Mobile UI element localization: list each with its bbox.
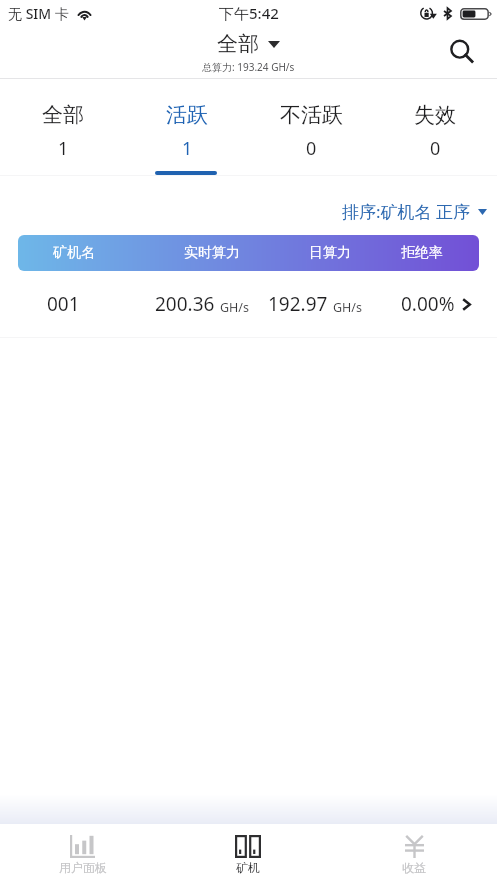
button[interactable]: 不活跃 (249, 79, 373, 175)
button[interactable]: 排序:矿机名 正序 (338, 185, 491, 226)
staticText: 0 (306, 136, 317, 161)
staticText: 活跃 (166, 102, 208, 128)
staticText: 001 (47, 291, 80, 317)
button[interactable]: 001 (0, 271, 497, 337)
button[interactable]: Search (440, 30, 484, 74)
button[interactable]: 用户面板 (0, 824, 165, 883)
staticText: GH/s (333, 299, 363, 316)
staticText: 矿机名 (53, 244, 95, 262)
staticText: 收益 (402, 860, 426, 875)
staticText: 拒绝率 (401, 244, 443, 262)
button[interactable]: 收益 (331, 824, 497, 883)
staticText: 0 (430, 136, 441, 161)
staticText: 失效 (414, 102, 456, 128)
staticText: 200.36 (155, 291, 215, 317)
button[interactable]: 活跃 (125, 79, 249, 175)
staticText: 实时算力 (184, 244, 240, 262)
staticText: 不活跃 (280, 102, 343, 128)
staticText: 192.97 (268, 291, 328, 317)
staticText: 无 SIM 卡 (8, 4, 69, 23)
staticText: 用户面板 (59, 860, 107, 875)
staticText: 全部 (217, 31, 259, 57)
staticText: 总算力: 193.24 GH/s (202, 60, 295, 74)
button[interactable]: 矿机 (165, 824, 331, 883)
staticText: 下午5:42 (219, 3, 279, 23)
staticText: 1 (182, 136, 193, 161)
staticText: 日算力 (309, 244, 351, 262)
staticText: 矿机 (236, 860, 260, 875)
button[interactable]: 全部 (0, 79, 125, 175)
button[interactable]: 失效 (373, 79, 497, 175)
staticText: 0.00% (401, 291, 455, 317)
button[interactable]: 全部 (190, 26, 307, 74)
staticText: 排序:矿机名 正序 (342, 200, 470, 223)
staticText: GH/s (220, 299, 250, 316)
staticText: 1 (58, 136, 69, 161)
staticText: 全部 (42, 102, 84, 128)
